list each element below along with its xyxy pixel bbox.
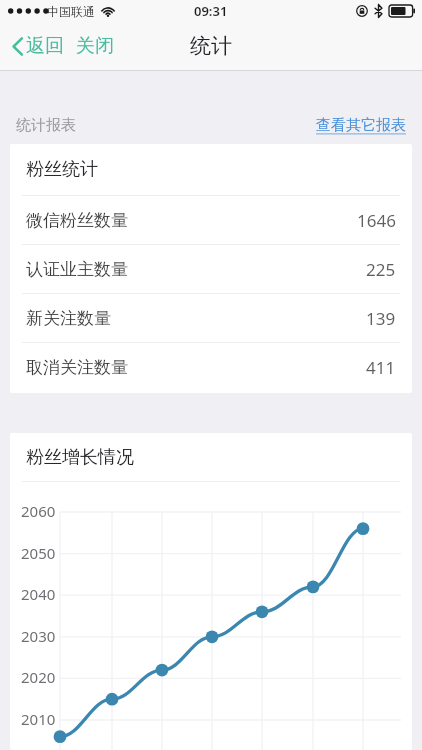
- staticText: 粉丝统计: [26, 158, 98, 181]
- staticText: 1646: [357, 209, 396, 232]
- button[interactable]: Back: [0, 28, 68, 64]
- staticText: 新关注数量: [26, 308, 111, 329]
- staticText: 2040: [21, 584, 56, 604]
- staticText: 查看其它报表: [316, 116, 406, 135]
- button[interactable]: 查看其它报表: [316, 116, 406, 144]
- staticText: 2060: [21, 501, 56, 521]
- staticText: 取消关注数量: [26, 357, 128, 378]
- staticText: 2050: [21, 543, 56, 563]
- button[interactable]: 取消关注数量: [10, 343, 412, 391]
- staticText: 微信粉丝数量: [26, 210, 128, 231]
- staticText: 认证业主数量: [26, 259, 128, 280]
- button[interactable]: 认证业主数量: [10, 245, 412, 294]
- other: Back: [12, 37, 23, 56]
- staticText: 粉丝增长情况: [26, 446, 134, 469]
- staticText: 2020: [21, 667, 56, 687]
- button[interactable]: 新关注数量: [10, 294, 412, 343]
- button[interactable]: 微信粉丝数量: [10, 196, 412, 245]
- staticText: 139: [366, 307, 396, 330]
- staticText: 返回: [26, 34, 64, 58]
- staticText: 411: [366, 356, 396, 379]
- staticText: 2030: [21, 626, 56, 646]
- staticText: 统计: [190, 33, 232, 59]
- staticText: 中国联通: [47, 4, 95, 19]
- staticText: 09:31: [194, 2, 228, 20]
- staticText: 2010: [21, 709, 56, 729]
- staticText: 关闭: [76, 34, 114, 58]
- staticText: 统计报表: [16, 116, 76, 135]
- button[interactable]: 关闭: [68, 28, 122, 64]
- staticText: 225: [366, 258, 396, 281]
